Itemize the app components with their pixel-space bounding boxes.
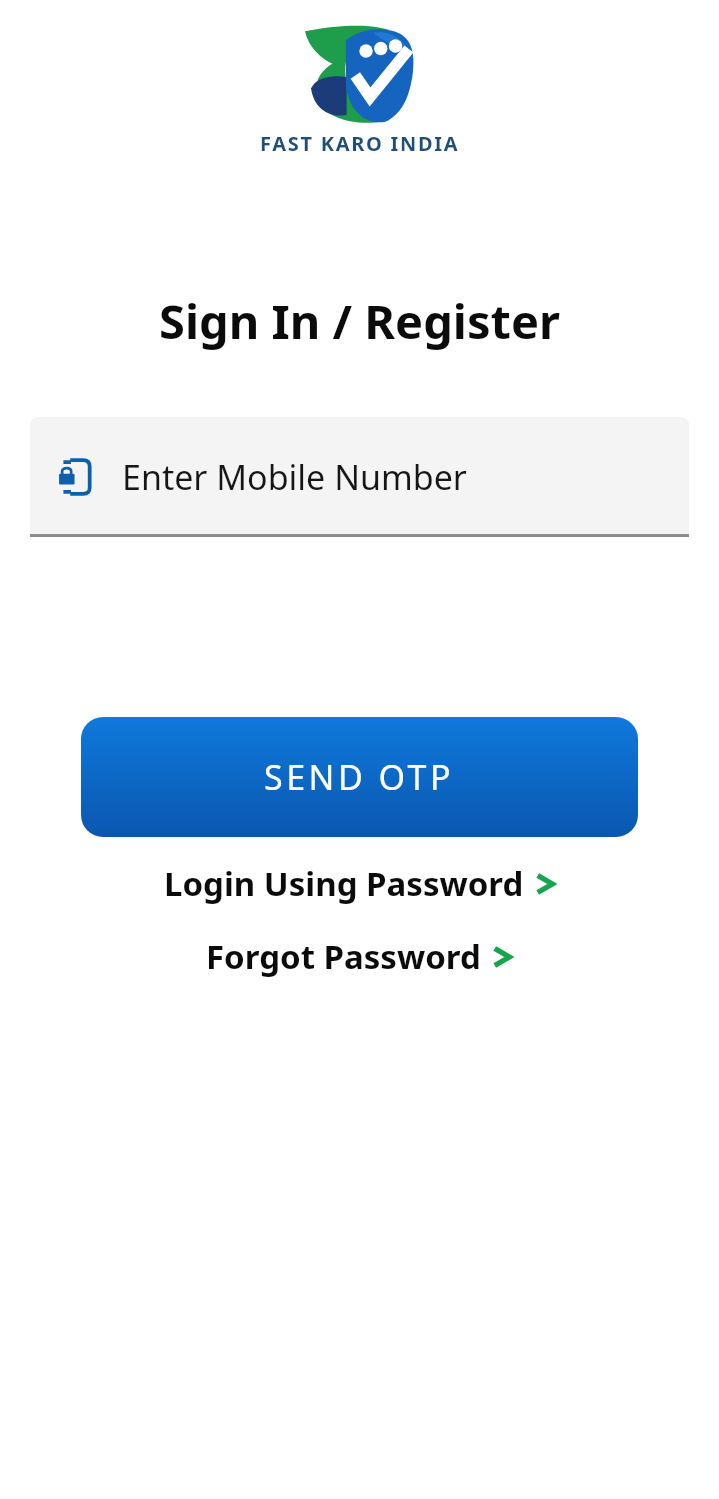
button[interactable]: Forgot Password	[200, 930, 519, 983]
other: Mobile number	[58, 457, 94, 497]
staticText: Forgot Password	[206, 934, 481, 979]
button[interactable]: Mobile number	[30, 417, 689, 537]
staticText: SEND OTP	[264, 754, 455, 800]
other: Forgot Password	[493, 943, 513, 971]
staticText: Login Using Password	[164, 861, 524, 906]
staticText: FAST KARO INDIA	[260, 130, 460, 157]
button[interactable]: SEND OTP	[81, 717, 638, 837]
staticText: Sign In / Register	[0, 289, 719, 353]
button[interactable]: Login Using Password	[158, 857, 562, 910]
other: Login Using Password	[536, 870, 556, 898]
staticText: Enter Mobile Number	[122, 454, 467, 500]
